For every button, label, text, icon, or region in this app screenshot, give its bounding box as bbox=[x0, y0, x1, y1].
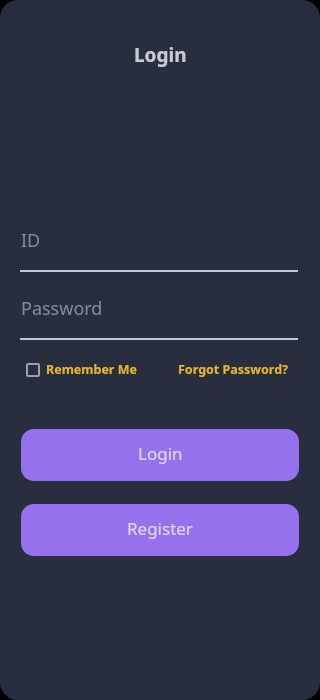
button[interactable]: Remember Me bbox=[26, 361, 137, 378]
staticText: Password bbox=[21, 296, 103, 321]
button[interactable]: ID bbox=[20, 228, 298, 272]
button[interactable]: Register bbox=[21, 504, 299, 556]
button[interactable]: Login bbox=[21, 429, 299, 481]
staticText: ID bbox=[21, 228, 41, 253]
staticText: Remember Me bbox=[46, 361, 137, 378]
button[interactable]: Password bbox=[20, 296, 298, 340]
staticText: Login bbox=[134, 42, 187, 68]
staticText: Register bbox=[127, 517, 193, 540]
button[interactable]: Forgot Password? bbox=[178, 361, 289, 378]
staticText: Login bbox=[138, 442, 183, 465]
